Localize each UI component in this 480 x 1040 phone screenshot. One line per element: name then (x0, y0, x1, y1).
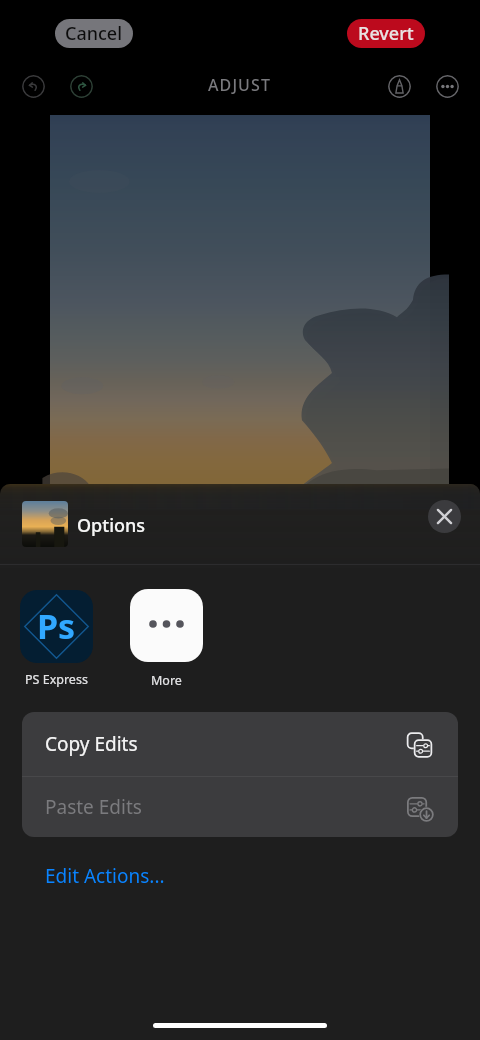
button[interactable]: Redo (70, 75, 93, 98)
staticText: Paste Edits (45, 794, 142, 820)
staticText: Options (77, 513, 146, 538)
button[interactable]: Markup (388, 75, 411, 98)
button[interactable]: Edit Actions... (45, 863, 165, 889)
staticText: Copy Edits (45, 731, 138, 757)
staticText: Cancel (65, 21, 123, 46)
button[interactable]: Cancel (55, 19, 133, 48)
staticText: Edit Actions... (45, 863, 165, 889)
button[interactable]: More (130, 589, 203, 689)
button[interactable]: Close (428, 500, 461, 533)
staticText: ADJUST (208, 74, 272, 96)
button[interactable]: Paste Edits (22, 777, 458, 837)
button[interactable]: More options (436, 75, 459, 98)
staticText: PS Express (25, 671, 88, 688)
staticText: More (151, 672, 182, 689)
button[interactable]: Ps (20, 590, 93, 688)
button[interactable]: Undo (22, 75, 45, 98)
button[interactable]: Revert (347, 19, 425, 48)
button[interactable]: Copy Edits (22, 712, 458, 776)
staticText: Revert (358, 21, 414, 46)
staticText: Ps (37, 603, 76, 649)
